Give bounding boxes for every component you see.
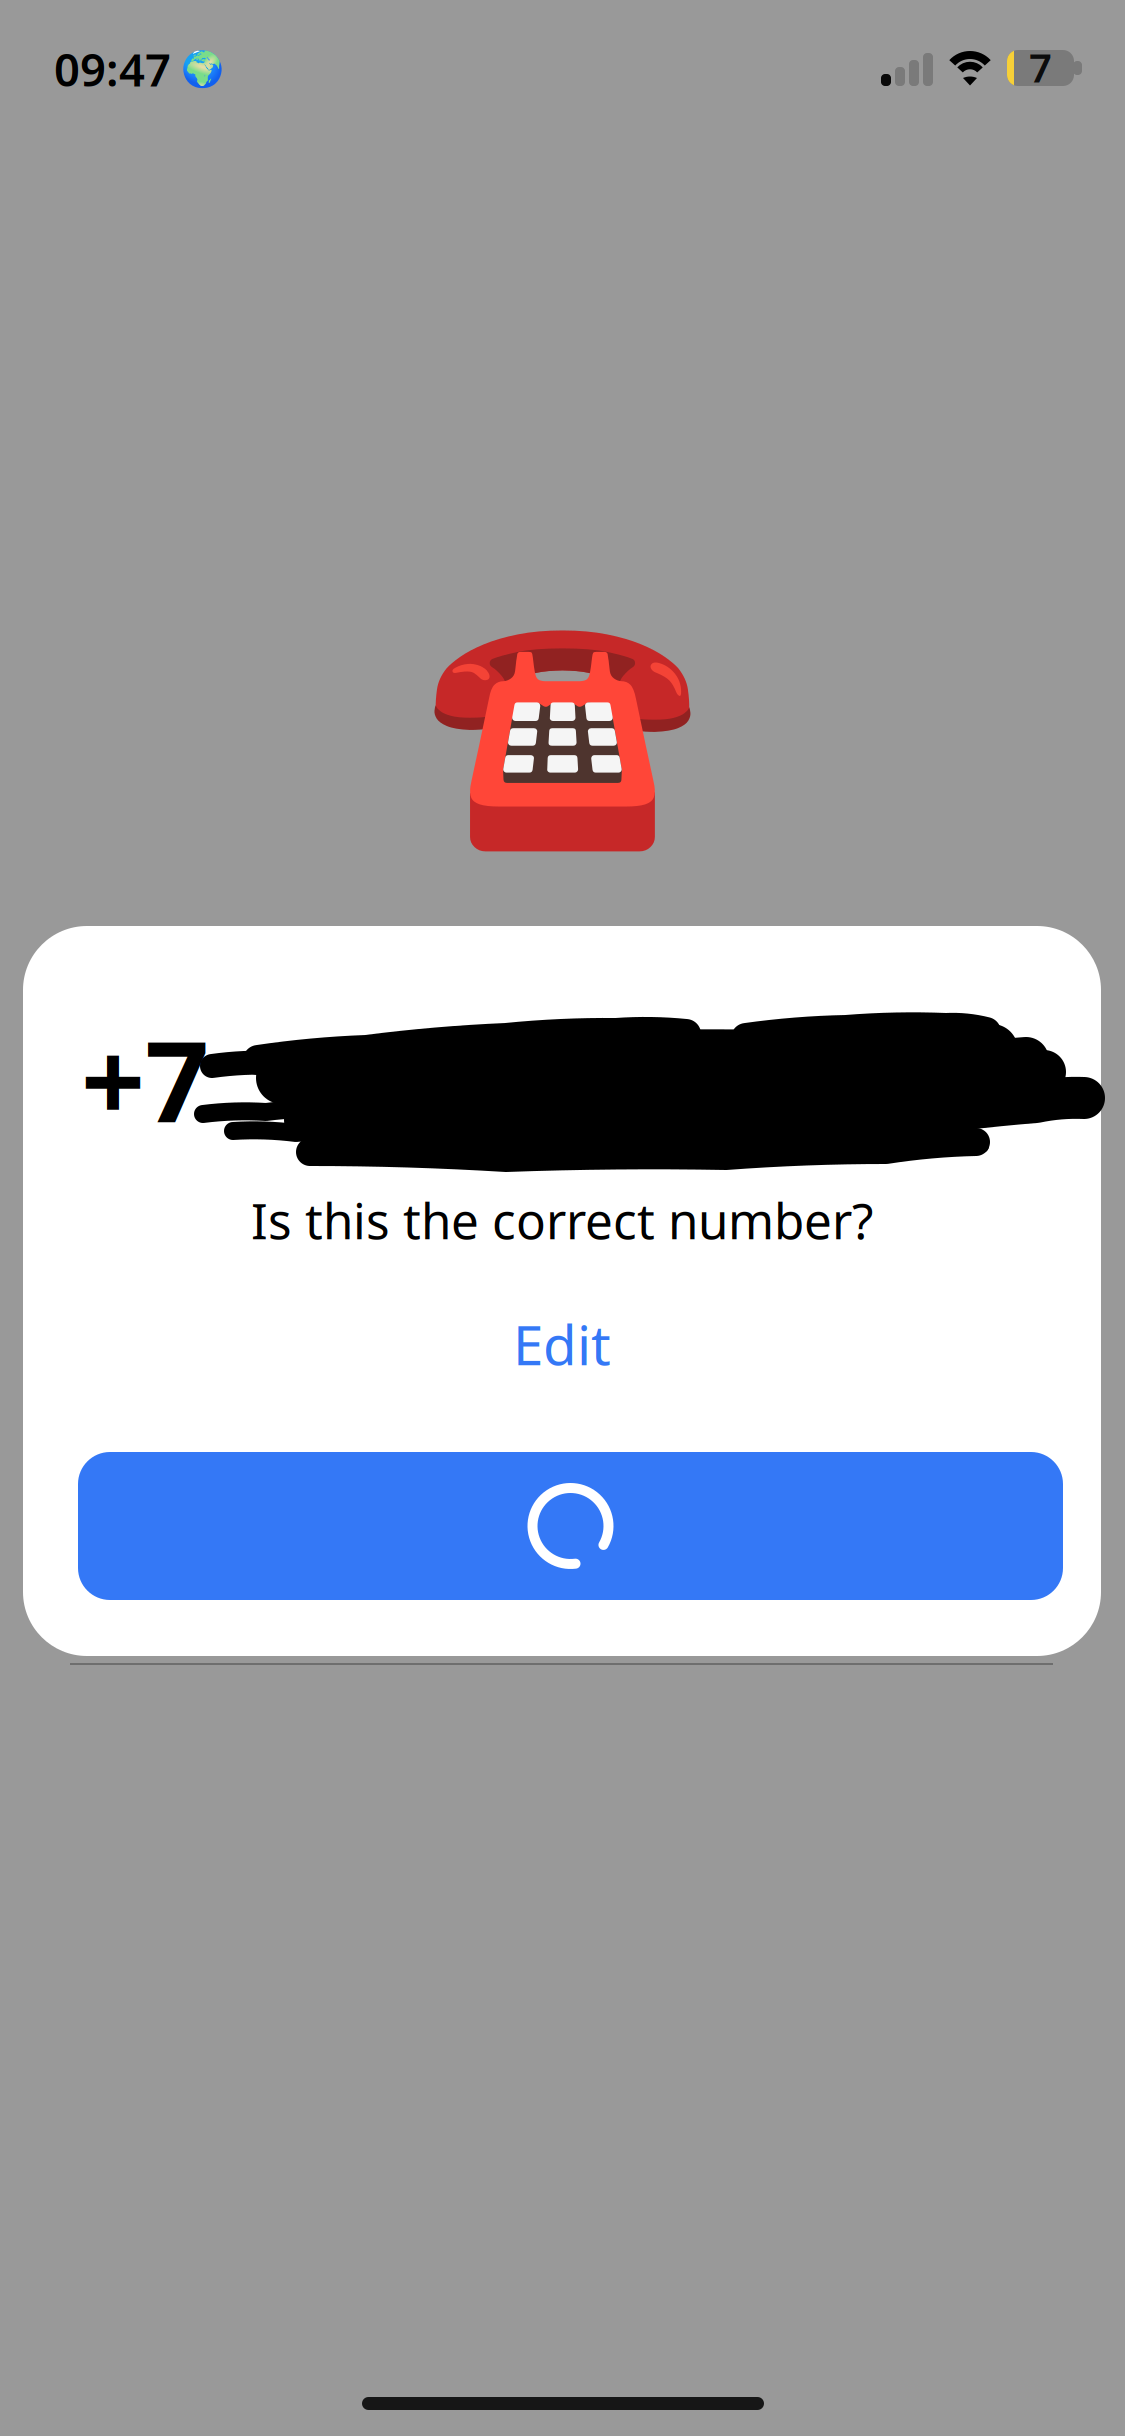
button[interactable]: Continue (78, 1452, 1063, 1600)
staticText: Is this the correct number? (251, 1187, 873, 1253)
staticText: 7 (1029, 40, 1052, 93)
staticText: 09:47 (54, 39, 171, 99)
button[interactable]: Edit (467, 1304, 657, 1384)
staticText: ☎️ (423, 600, 702, 856)
staticText: Edit (513, 1308, 611, 1380)
staticText: +7 (81, 1004, 209, 1153)
staticText: 🌍 (181, 49, 224, 89)
